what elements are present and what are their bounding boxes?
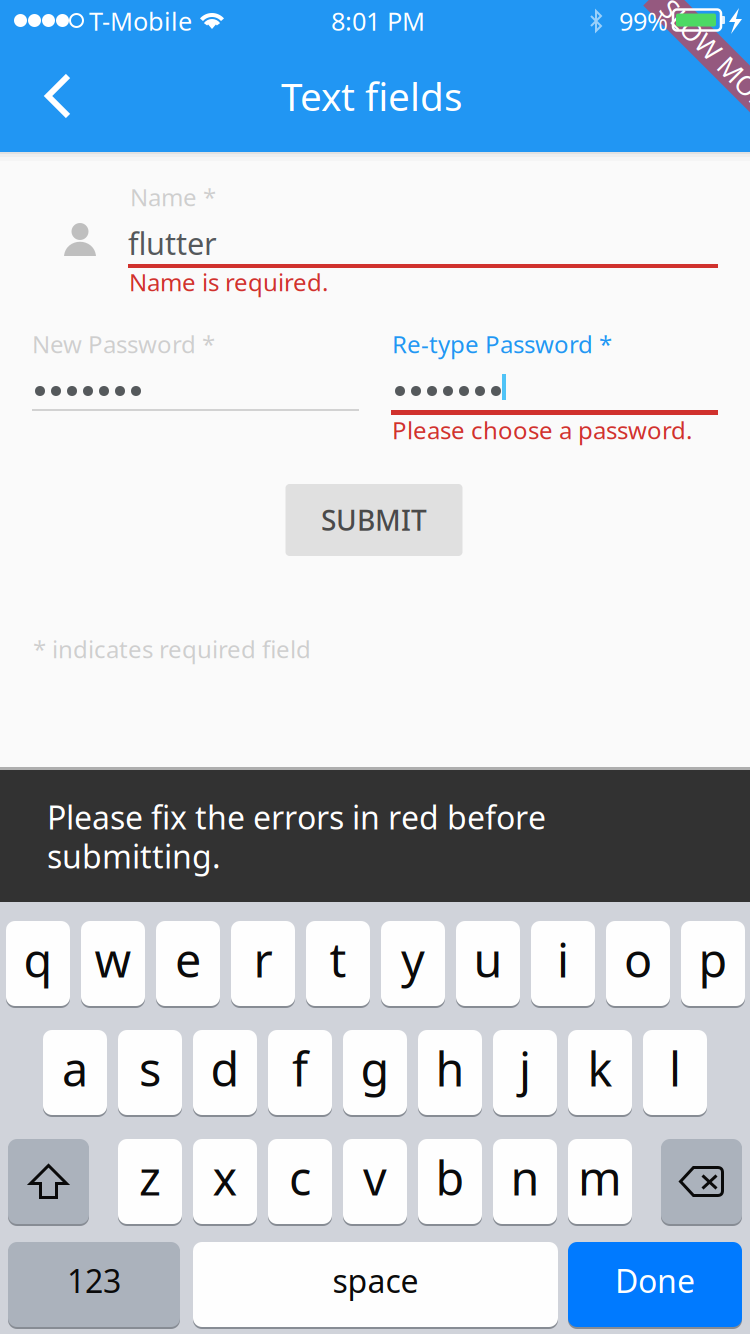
staticText: Please fix the errors in red before	[47, 796, 546, 838]
button[interactable]: a	[43, 1030, 107, 1118]
staticText: s	[139, 1037, 161, 1099]
button[interactable]: q	[6, 921, 70, 1009]
staticText: z	[139, 1146, 161, 1208]
staticText: Done	[615, 1259, 695, 1302]
button[interactable]: b	[418, 1139, 482, 1227]
staticText: q	[23, 928, 52, 990]
button[interactable]: Delete	[661, 1139, 742, 1227]
staticText: * indicates required field	[33, 633, 311, 665]
staticText: c	[289, 1146, 311, 1208]
staticText: h	[435, 1037, 464, 1099]
button[interactable]: v	[343, 1139, 407, 1227]
staticText: r	[253, 928, 272, 990]
button[interactable]: x	[193, 1139, 257, 1227]
button[interactable]: u	[456, 921, 520, 1009]
button[interactable]: n	[493, 1139, 557, 1227]
staticText: flutter	[128, 223, 217, 263]
button[interactable]: z	[118, 1139, 182, 1227]
button[interactable]: r	[231, 921, 295, 1009]
staticText: Name is required.	[129, 266, 328, 298]
staticText: f	[292, 1037, 308, 1099]
staticText: y	[401, 928, 425, 990]
staticText: 99%	[619, 4, 668, 38]
staticText: e	[175, 928, 201, 990]
staticText: g	[360, 1037, 389, 1099]
staticText: i	[557, 928, 569, 990]
staticText: 8:01 PM	[331, 4, 425, 38]
staticText: u	[473, 928, 502, 990]
staticText: t	[329, 928, 346, 990]
button[interactable]: h	[418, 1030, 482, 1118]
button[interactable]: k	[568, 1030, 632, 1118]
staticText: SLOW MODE	[622, 89, 750, 124]
button[interactable]: d	[193, 1030, 257, 1118]
staticText: v	[363, 1146, 387, 1208]
button[interactable]: g	[343, 1030, 407, 1118]
staticText: d	[210, 1037, 239, 1099]
button[interactable]: Done	[568, 1242, 742, 1330]
staticText: b	[435, 1146, 464, 1208]
button[interactable]: y	[381, 921, 445, 1009]
staticText: n	[510, 1146, 539, 1208]
staticText: k	[587, 1037, 612, 1099]
button[interactable]: t	[306, 921, 370, 1009]
button[interactable]: Shift	[8, 1139, 89, 1227]
staticText: o	[624, 928, 652, 990]
staticText: Name *	[130, 181, 216, 213]
button[interactable]: e	[156, 921, 220, 1009]
staticText: Text fields	[281, 70, 463, 122]
staticText: SUBMIT	[321, 501, 427, 539]
button[interactable]: s	[118, 1030, 182, 1118]
button[interactable]: w	[81, 921, 145, 1009]
staticText: m	[578, 1146, 622, 1208]
button[interactable]: l	[643, 1030, 707, 1118]
staticText: submitting.	[47, 835, 221, 877]
staticText: l	[669, 1037, 681, 1099]
button[interactable]: Back	[18, 56, 98, 136]
button[interactable]: space	[193, 1242, 558, 1330]
button[interactable]: 123	[8, 1242, 180, 1330]
staticText: New Password *	[32, 328, 215, 360]
staticText: w	[94, 928, 131, 990]
staticText: x	[212, 1146, 237, 1208]
staticText: p	[698, 928, 727, 990]
button[interactable]: j	[493, 1030, 557, 1118]
staticText: Re-type Password *	[392, 328, 612, 360]
button[interactable]: f	[268, 1030, 332, 1118]
button[interactable]: SUBMIT	[285, 484, 462, 556]
staticText: j	[519, 1037, 531, 1099]
staticText: space	[332, 1259, 418, 1302]
button[interactable]: m	[568, 1139, 632, 1227]
button[interactable]: p	[681, 921, 745, 1009]
staticText: 123	[67, 1259, 121, 1302]
staticText: a	[62, 1037, 88, 1099]
staticText: Please choose a password.	[392, 414, 692, 446]
button[interactable]: i	[531, 921, 595, 1009]
staticText: T-Mobile	[89, 4, 192, 38]
button[interactable]: c	[268, 1139, 332, 1227]
button[interactable]: o	[606, 921, 670, 1009]
